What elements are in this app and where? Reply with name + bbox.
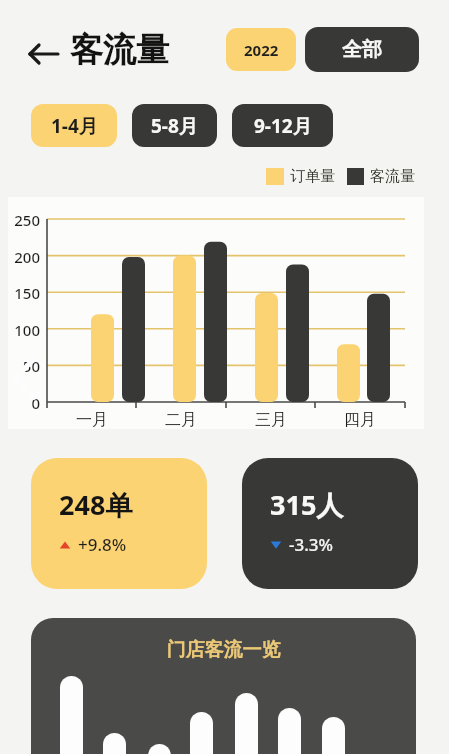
button[interactable]: 248单 (31, 458, 207, 589)
staticText: 100 (4, 320, 40, 340)
button[interactable]: 315人 (242, 458, 418, 589)
staticText: 0 (4, 393, 40, 413)
staticText: 一月 (57, 410, 127, 430)
button[interactable]: 2022 (226, 28, 296, 71)
staticText: -3.3% (289, 533, 334, 556)
staticText: 5-8月 (151, 113, 198, 139)
staticText: 2022 (244, 40, 279, 60)
staticText: 150 (4, 283, 40, 303)
staticText: 315人 (270, 486, 344, 523)
staticText: 全部 (342, 37, 382, 62)
button[interactable]: 门店客流一览 (31, 618, 416, 754)
button[interactable]: 全部 (305, 27, 419, 72)
staticText: 客流量 (370, 167, 415, 186)
staticText: 四月 (325, 410, 395, 430)
staticText: 50 (4, 356, 40, 376)
button[interactable]: Back (22, 32, 66, 76)
staticText: 门店客流一览 (31, 638, 416, 662)
staticText: 订单量 (290, 167, 335, 186)
staticText: 200 (4, 247, 40, 267)
staticText: 1-4月 (51, 113, 98, 139)
staticText: 客流量 (70, 29, 169, 71)
button[interactable]: 1-4月 (31, 104, 117, 147)
staticText: 三月 (236, 410, 306, 430)
staticText: 250 (4, 210, 40, 230)
staticText: 248单 (59, 486, 133, 523)
staticText: +9.8% (78, 533, 127, 556)
staticText: 9-12月 (254, 113, 312, 139)
button[interactable]: 5-8月 (132, 104, 217, 147)
button[interactable]: Previous (6, 352, 42, 404)
button[interactable]: 9-12月 (232, 104, 333, 147)
staticText: 二月 (146, 410, 216, 430)
